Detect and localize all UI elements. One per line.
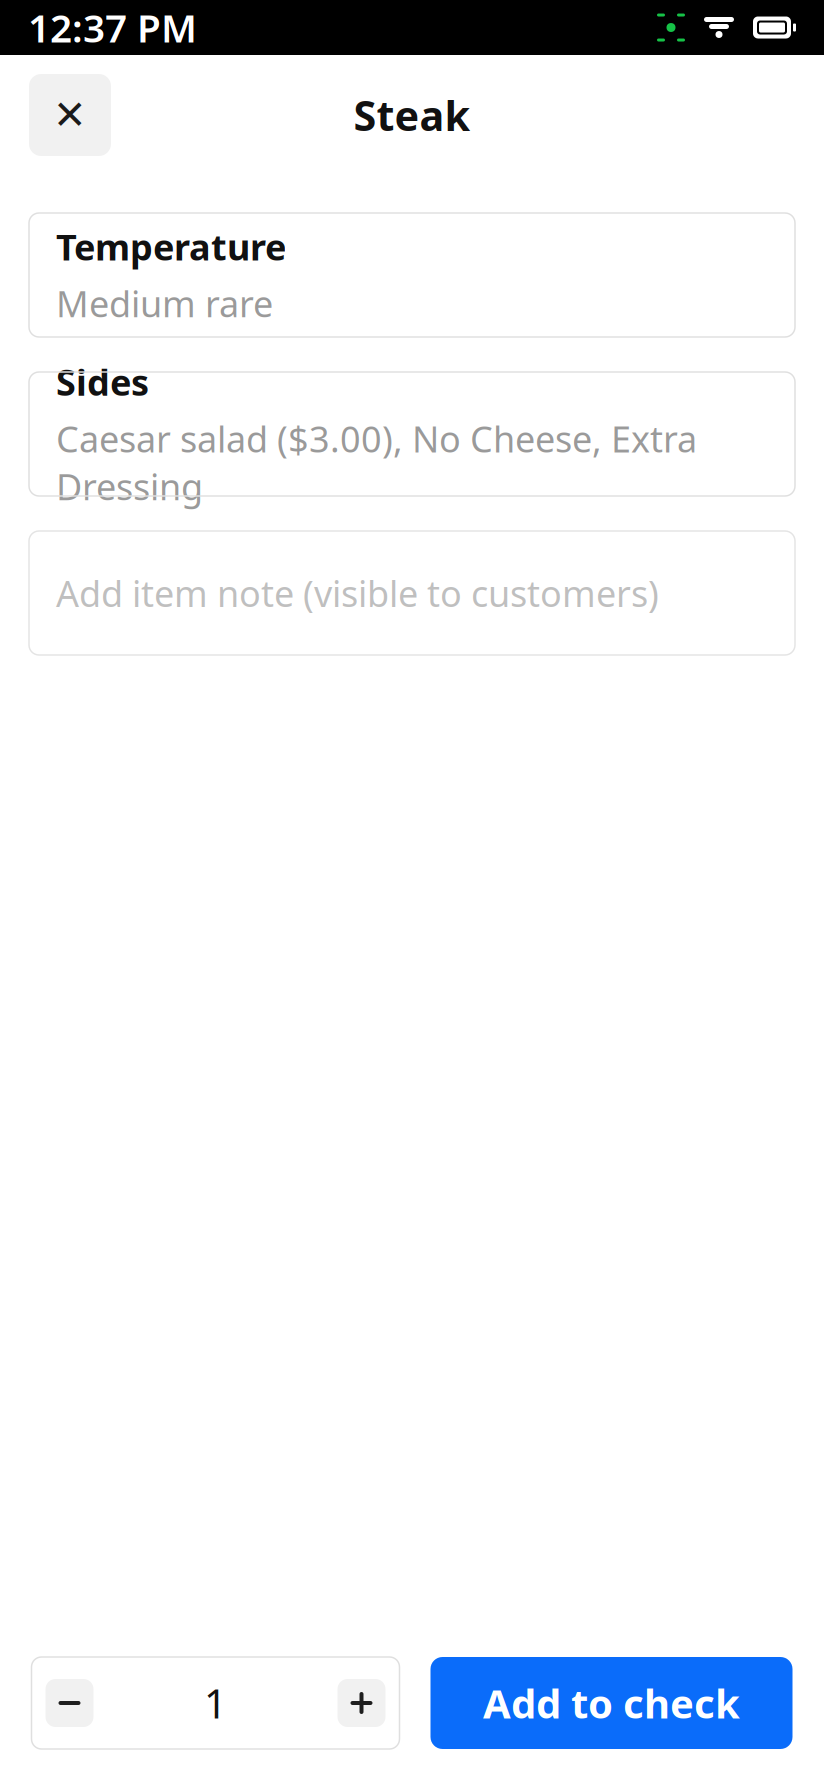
button[interactable]: Close [29,74,111,156]
staticText: Medium rare [56,279,273,327]
staticText: 1 [204,1676,227,1729]
staticText: Add item note (visible to customers) [56,569,659,617]
staticText: 12:37 PM [28,2,197,53]
button[interactable]: Sides [29,372,795,496]
staticText: Steak [353,88,470,142]
staticText: ✕ [53,92,87,138]
staticText: Sides [56,358,149,406]
button[interactable]: Add to check [430,1657,792,1749]
button[interactable]: Increase quantity [337,1679,385,1727]
staticText: Add to check [483,1676,740,1729]
staticText: Caesar salad ($3.00), No Cheese, Extra D… [56,415,697,510]
button[interactable]: Add item note (visible to customers) [29,531,795,655]
staticText: Temperature [56,223,286,270]
button[interactable]: Temperature [29,213,795,337]
button[interactable]: Decrease quantity [45,1679,93,1727]
